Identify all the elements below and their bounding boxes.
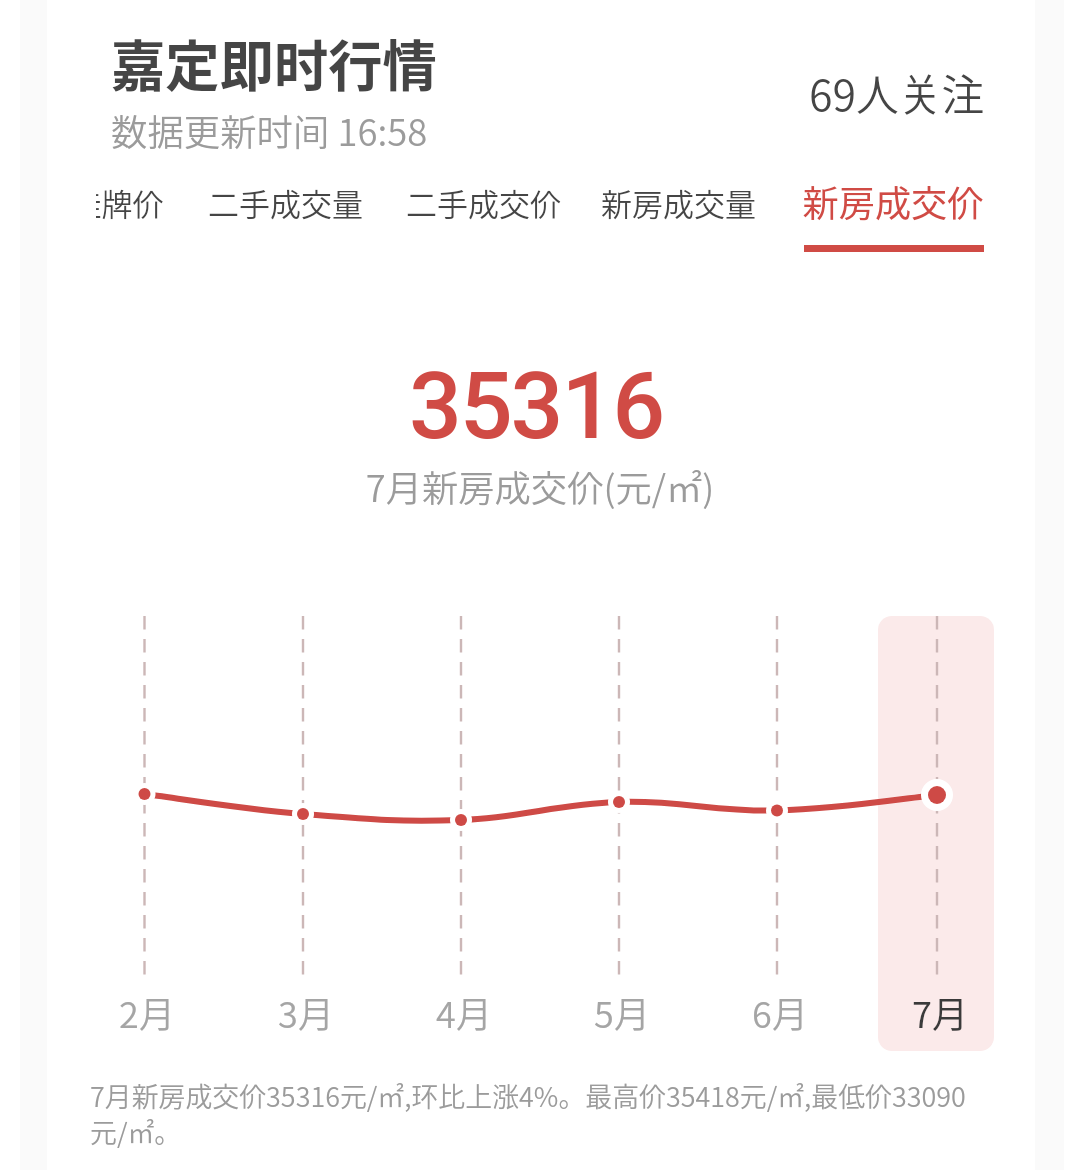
staticText: 二手成交价 (393, 180, 574, 230)
staticText: 5月 (562, 986, 682, 1036)
button[interactable]: 新房成交量 (588, 166, 769, 252)
staticText: 69人关注 (809, 61, 985, 123)
staticText: 7月新房成交价(元/㎡) (0, 460, 1080, 520)
button[interactable]: 挂牌价 (96, 166, 164, 252)
other: 新房成交价趋势图 (0, 0, 1080, 1170)
button[interactable]: 二手成交量 (195, 166, 376, 252)
staticText: 嘉定即时行情 (111, 23, 437, 102)
staticText: 7月 (880, 986, 1000, 1036)
button[interactable]: 新房成交价 (789, 166, 997, 252)
button[interactable]: 二手成交价 (393, 166, 574, 252)
staticText: 挂牌价 (96, 180, 164, 230)
staticText: 3月 (246, 986, 366, 1036)
staticText: 新房成交价 (789, 175, 997, 225)
staticText: 7月新房成交价35316元/㎡,环比上涨4%。最高价35418元/㎡,最低价33… (90, 1076, 975, 1151)
staticText: 二手成交量 (195, 180, 376, 230)
button[interactable]: 69人关注 (790, 50, 995, 114)
staticText: 35316 (0, 352, 1076, 462)
staticText: 新房成交量 (588, 180, 769, 230)
staticText: 数据更新时间 16:58 (111, 104, 428, 157)
staticText: 6月 (720, 986, 840, 1036)
staticText: 4月 (404, 986, 524, 1036)
staticText: 2月 (87, 986, 207, 1036)
